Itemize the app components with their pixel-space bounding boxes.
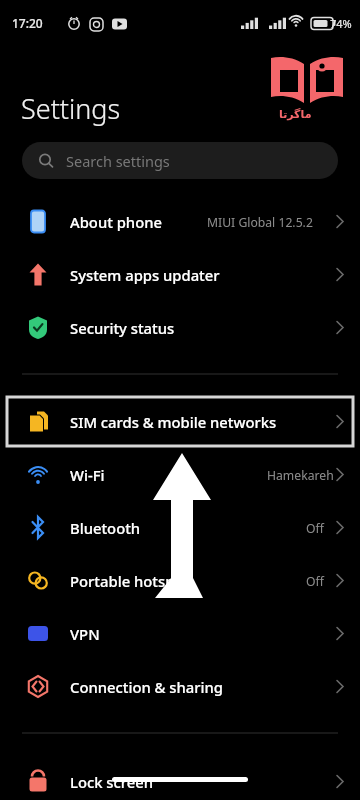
staticText: Off [306,520,324,537]
button[interactable]: Bluetooth [0,501,360,554]
button[interactable]: SIM cards & mobile networks [0,397,360,446]
staticText: Bluetooth [70,518,141,538]
staticText: 17:20 [12,15,43,31]
button[interactable]: About phone [0,195,360,248]
staticText: Security status [70,318,175,338]
staticText: MIUI Global 12.5.2 [207,214,313,231]
staticText: Lock screen [70,772,154,792]
button[interactable]: Security status [0,301,360,354]
button[interactable]: Lock screen [0,755,360,800]
staticText: SIM cards & mobile networks [70,412,277,432]
staticText: Off [306,573,324,590]
staticText: About phone [70,212,162,232]
staticText: Connection & sharing [70,677,223,697]
button[interactable]: Connection & sharing [0,660,360,713]
staticText: Settings [21,90,121,127]
button[interactable]: System apps updater [0,248,360,301]
button[interactable]: VPN [0,607,360,660]
staticText: Hamekareh [267,467,334,484]
staticText: VPN [70,624,100,644]
button[interactable]: Wi-Fi [0,448,360,501]
staticText: 74% [330,16,352,31]
button[interactable]: Search settings [22,142,338,179]
staticText: ماگرتا [279,108,312,121]
staticText: Search settings [66,151,170,171]
staticText: Wi-Fi [70,465,105,485]
button[interactable]: Portable hotspot [0,554,360,607]
staticText: System apps updater [70,265,220,285]
staticText: Portable hotspot [70,571,190,591]
